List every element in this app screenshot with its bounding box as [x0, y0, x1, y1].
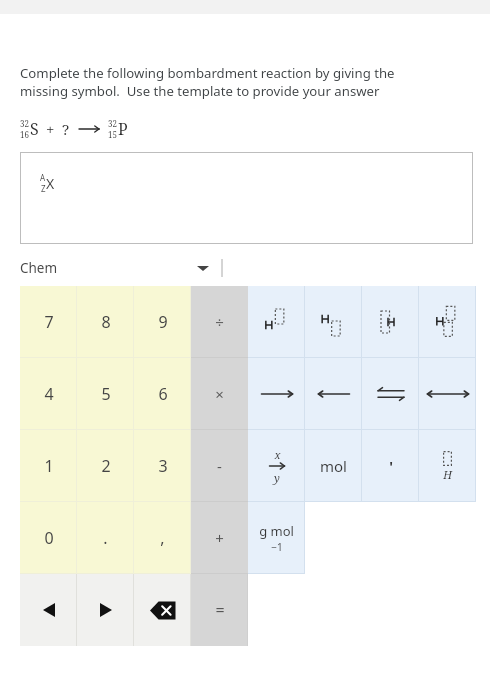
button[interactable]: ×	[191, 358, 248, 430]
staticText: P	[118, 118, 128, 140]
button[interactable]: .	[77, 502, 134, 574]
staticText: 4	[44, 383, 54, 405]
staticText: 32	[108, 118, 117, 129]
staticText: 32	[20, 118, 29, 129]
button[interactable]: mol	[305, 430, 362, 502]
button[interactable]	[362, 358, 419, 430]
button[interactable]: =	[191, 574, 248, 646]
button[interactable]: 1	[20, 430, 77, 502]
staticText: .	[103, 527, 108, 549]
button[interactable]: -	[191, 430, 248, 502]
button[interactable]: ÷	[191, 286, 248, 358]
staticText: Complete the following bombardment react…	[20, 64, 395, 82]
button[interactable]	[419, 286, 476, 358]
button[interactable]	[248, 286, 305, 358]
staticText: +	[215, 528, 224, 548]
button[interactable]: 2	[77, 430, 134, 502]
button[interactable]: 7	[20, 286, 77, 358]
button[interactable]: 9	[134, 286, 191, 358]
button[interactable]: 5	[77, 358, 134, 430]
button[interactable]	[419, 358, 476, 430]
button[interactable]: Chem	[20, 250, 210, 286]
staticText: −1	[271, 540, 283, 554]
staticText: 16	[20, 129, 29, 140]
staticText: X	[46, 174, 55, 193]
staticText: Chem	[20, 259, 58, 277]
button[interactable]	[248, 358, 305, 430]
button[interactable]: +	[191, 502, 248, 574]
staticText: 5	[101, 383, 111, 405]
staticText: 3	[158, 455, 168, 477]
staticText: Z	[41, 183, 46, 194]
button[interactable]: 6	[134, 358, 191, 430]
button[interactable]: ,	[134, 502, 191, 574]
staticText: 7	[44, 311, 54, 333]
staticText: 15	[108, 129, 117, 140]
staticText: S	[30, 118, 39, 140]
staticText: 9	[158, 311, 168, 333]
staticText: ,	[160, 527, 165, 549]
button[interactable]: 3	[134, 430, 191, 502]
staticText: 6	[158, 383, 168, 405]
button[interactable]: Move left	[20, 574, 77, 646]
staticText: -	[217, 456, 222, 476]
button[interactable]	[305, 286, 362, 358]
button[interactable]	[362, 286, 419, 358]
staticText: =	[215, 599, 225, 621]
staticText: 8	[101, 311, 111, 333]
button[interactable]: x	[248, 430, 305, 502]
staticText: H	[443, 467, 452, 482]
staticText: ÷	[215, 312, 224, 332]
button[interactable]: A	[20, 152, 473, 244]
button[interactable]: 8	[77, 286, 134, 358]
button[interactable]: g mol	[248, 502, 305, 574]
button[interactable]: 0	[20, 502, 77, 574]
staticText: missing symbol. Use the template to prov…	[20, 82, 380, 100]
button[interactable]: Backspace	[134, 574, 191, 646]
staticText: y	[274, 470, 280, 485]
button[interactable]	[305, 358, 362, 430]
staticText: ?	[62, 119, 70, 139]
button[interactable]: H	[419, 430, 476, 502]
staticText: 1	[44, 455, 54, 477]
staticText: '	[389, 457, 393, 476]
staticText: A	[40, 172, 46, 183]
staticText: 2	[101, 455, 111, 477]
staticText: 0	[44, 527, 54, 549]
button[interactable]: '	[362, 430, 419, 502]
button[interactable]: 4	[20, 358, 77, 430]
staticText: g mol	[259, 522, 294, 540]
button[interactable]: Move right	[77, 574, 134, 646]
other: Open keypad selector	[196, 263, 210, 273]
staticText: +	[46, 119, 55, 139]
staticText: ×	[215, 384, 224, 404]
staticText: x	[274, 447, 281, 462]
staticText: mol	[320, 456, 347, 476]
